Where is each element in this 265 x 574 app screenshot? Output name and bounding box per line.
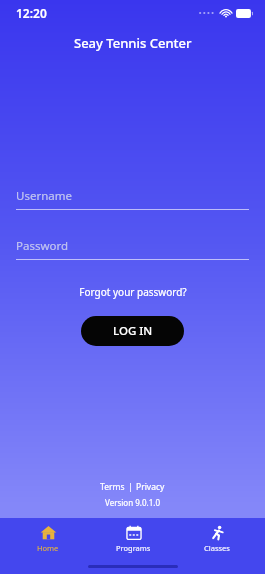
button[interactable]: LOG IN (81, 316, 184, 346)
button[interactable]: Forgot your password? (71, 282, 195, 302)
button[interactable]: Username (16, 188, 249, 210)
staticText: Seay Tennis Center (74, 34, 192, 52)
staticText: Username (16, 188, 72, 204)
button[interactable]: Terms (97, 479, 128, 495)
staticText: Password (16, 238, 69, 254)
staticText: LOG IN (113, 323, 153, 339)
button[interactable]: Password (16, 238, 249, 260)
staticText: | (128, 481, 133, 493)
staticText: Programs (116, 543, 151, 553)
other: Home (40, 524, 57, 541)
staticText: Home (37, 543, 59, 553)
button[interactable]: Privacy (133, 479, 168, 495)
other: Classes (210, 525, 226, 541)
staticText: 12:20 (16, 5, 47, 21)
button[interactable]: Classes (180, 521, 254, 556)
staticText: Classes (204, 543, 230, 553)
other: Programs (126, 525, 142, 541)
button[interactable]: Programs (96, 521, 170, 556)
button[interactable]: Home (11, 521, 85, 556)
staticText: Version 9.0.1.0 (105, 497, 160, 508)
